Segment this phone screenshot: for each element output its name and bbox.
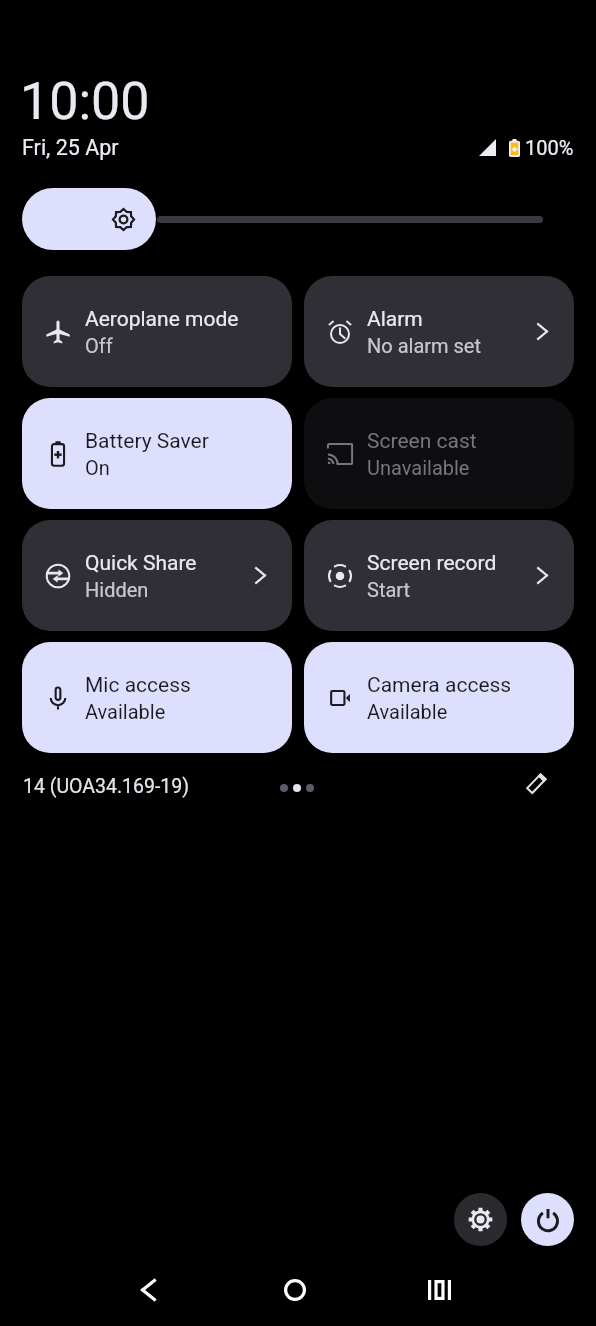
button[interactable]: Settings [454,1193,507,1246]
staticText: Start [367,578,411,601]
staticText: Camera access [367,673,512,698]
button[interactable]: Battery Saver [22,398,292,509]
staticText: Aeroplane mode [85,307,239,332]
staticText: Unavailable [367,456,470,479]
staticText: Fri, 25 Apr [22,135,119,160]
button[interactable]: Power [521,1193,574,1246]
button[interactable]: Back [124,1266,172,1314]
staticText: Hidden [85,578,149,601]
button[interactable]: Home [271,1266,319,1314]
staticText: Off [85,334,113,357]
button[interactable]: Brightness [22,188,156,250]
staticText: On [85,456,110,479]
button[interactable]: Edit tiles [520,766,554,800]
button[interactable]: Quick Share [22,520,292,631]
staticText: No alarm set [367,334,482,357]
staticText: Battery Saver [85,429,209,454]
staticText: 14 (UOA34.169-19) [23,775,190,798]
button[interactable]: Alarm [304,276,574,387]
button[interactable]: Screen cast [304,398,574,509]
staticText: Screen cast [367,429,477,454]
staticText: Mic access [85,673,191,698]
staticText: 10:00 [20,71,150,132]
staticText: Available [367,700,448,723]
staticText: Screen record [367,551,497,576]
button[interactable]: Aeroplane mode [22,276,292,387]
staticText: Quick Share [85,551,197,576]
button[interactable]: Screen record [304,520,574,631]
staticText: Alarm [367,307,423,332]
button[interactable]: Recents [415,1266,463,1314]
staticText: 100% [525,136,574,159]
button[interactable]: Camera access [304,642,574,753]
staticText: Available [85,700,166,723]
button[interactable]: Mic access [22,642,292,753]
